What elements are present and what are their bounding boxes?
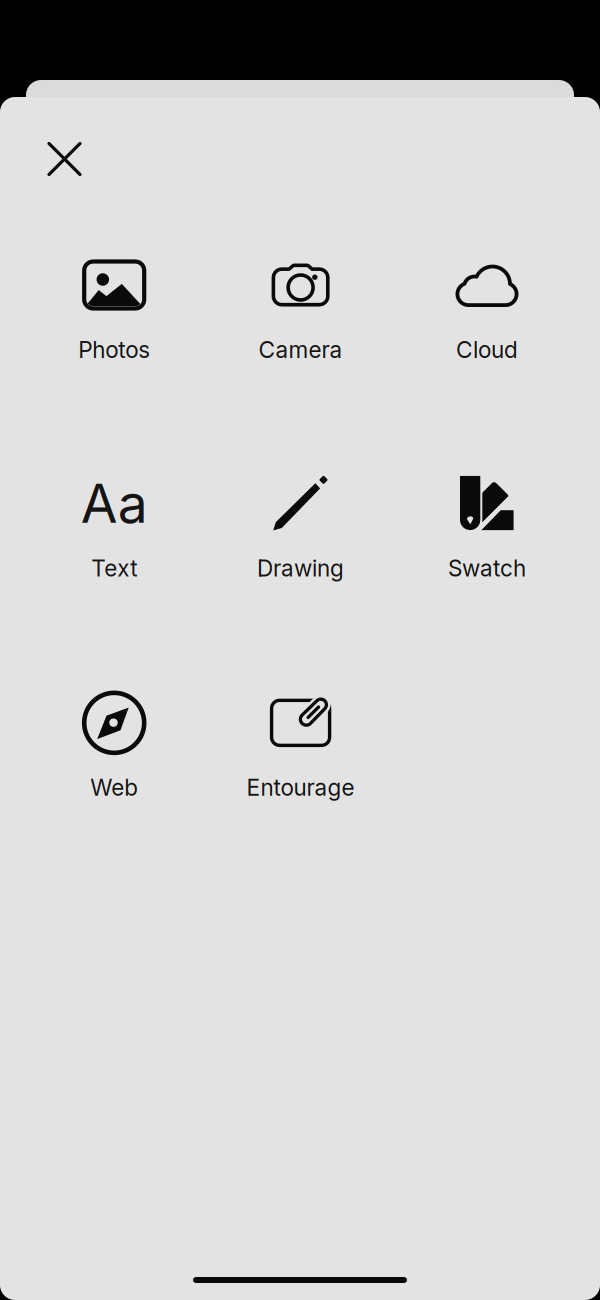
button[interactable]: Close	[41, 136, 87, 182]
staticText: Drawing	[257, 554, 344, 582]
staticText: Web	[90, 774, 138, 801]
button[interactable]: Swatch	[394, 472, 580, 582]
staticText: Aa	[81, 471, 148, 536]
button[interactable]: Drawing	[207, 472, 394, 582]
button[interactable]: Photos	[21, 254, 207, 363]
staticText: Swatch	[448, 554, 526, 582]
button[interactable]: Cloud	[394, 254, 580, 363]
staticText: Text	[91, 554, 137, 582]
staticText: Cloud	[456, 336, 518, 363]
button[interactable]: Entourage	[207, 692, 394, 801]
staticText: Camera	[259, 336, 343, 363]
staticText: Entourage	[247, 774, 355, 801]
button[interactable]: Camera	[207, 254, 394, 363]
button[interactable]: Web	[21, 692, 207, 801]
button[interactable]: Aa	[21, 472, 207, 582]
staticText: Photos	[78, 336, 150, 363]
